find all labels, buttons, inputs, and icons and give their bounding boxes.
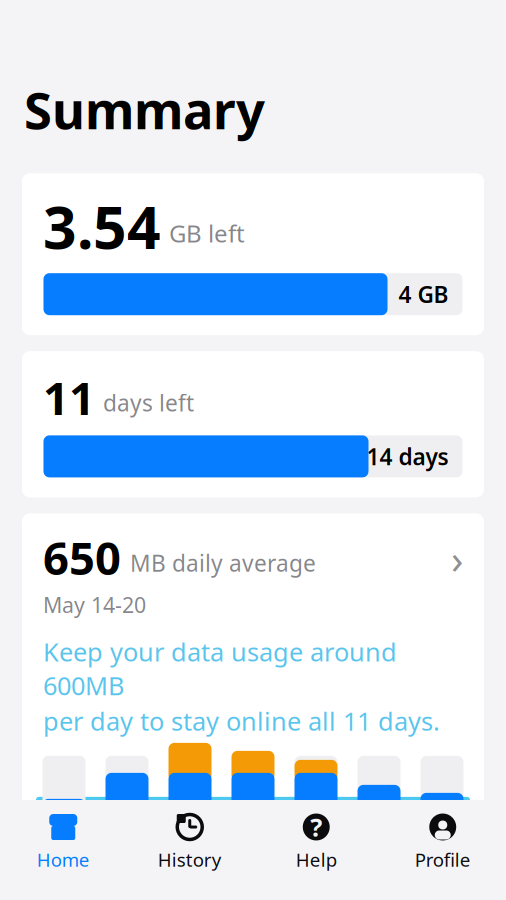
staticText: Profile bbox=[415, 847, 471, 872]
staticText: 14 days bbox=[366, 441, 448, 471]
staticText: Home bbox=[37, 847, 90, 872]
staticText: per day to stay online all 11 days. bbox=[43, 704, 440, 738]
staticText: days left bbox=[103, 388, 194, 418]
staticText: 500 bbox=[424, 821, 460, 849]
button[interactable]: History bbox=[126, 812, 253, 872]
staticText: 900 bbox=[172, 821, 208, 849]
staticText: 4 GB bbox=[398, 279, 448, 309]
button[interactable]: Home bbox=[0, 812, 126, 872]
button[interactable]: Help bbox=[253, 812, 379, 872]
staticText: Summary bbox=[24, 76, 265, 143]
staticText: 650 bbox=[43, 527, 121, 588]
button[interactable]: Profile bbox=[379, 812, 506, 872]
staticText: › bbox=[451, 532, 463, 585]
staticText: ? bbox=[310, 810, 322, 844]
staticText: 500 bbox=[46, 821, 82, 849]
staticText: MB bbox=[301, 849, 331, 874]
staticText: May 14-20 bbox=[43, 591, 146, 619]
staticText: MB bbox=[175, 849, 205, 874]
button[interactable]: 650 bbox=[22, 513, 484, 874]
staticText: Keep your data usage around 600MB bbox=[43, 635, 397, 702]
staticText: History bbox=[158, 847, 222, 872]
staticText: Help bbox=[296, 847, 337, 872]
staticText: 700 bbox=[298, 821, 334, 849]
staticText: 11 bbox=[43, 367, 95, 427]
staticText: GB left bbox=[169, 217, 245, 249]
staticText: MB daily average bbox=[130, 548, 316, 578]
staticText: 3.54 bbox=[43, 187, 161, 265]
staticText: MB bbox=[49, 849, 79, 874]
staticText: MB bbox=[427, 849, 457, 874]
